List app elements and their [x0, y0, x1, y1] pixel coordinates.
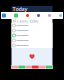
button[interactable] — [2, 13, 6, 17]
staticText: My tasks today — [12, 18, 38, 24]
button[interactable] — [11, 38, 52, 43]
button[interactable] — [32, 65, 39, 69]
button[interactable] — [26, 14, 29, 17]
button[interactable] — [18, 65, 25, 69]
button[interactable] — [48, 14, 51, 17]
button[interactable] — [25, 65, 32, 69]
button[interactable] — [11, 33, 52, 38]
button[interactable] — [59, 14, 62, 17]
button[interactable] — [39, 65, 46, 69]
staticText: Today — [12, 5, 27, 13]
button[interactable] — [37, 14, 40, 17]
button[interactable] — [11, 43, 52, 48]
button[interactable] — [11, 28, 52, 33]
button[interactable] — [11, 65, 18, 69]
button[interactable] — [11, 23, 52, 28]
button[interactable] — [14, 13, 18, 17]
button[interactable] — [46, 65, 52, 69]
